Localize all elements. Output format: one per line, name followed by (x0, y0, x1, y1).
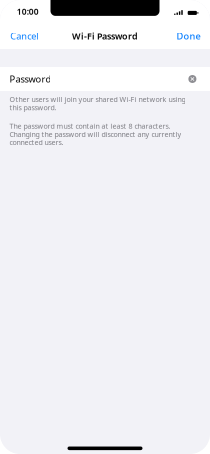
button[interactable]: Cancel (10, 26, 44, 46)
staticText: The password must contain at least 8 cha… (9, 121, 181, 147)
staticText: Password (9, 73, 51, 85)
button[interactable]: Done (172, 26, 200, 46)
staticText: Wi-Fi Password (72, 30, 138, 42)
staticText: Other users will join your shared Wi-Fi … (9, 94, 185, 112)
button[interactable]: Password (0, 67, 210, 91)
staticText: 10:00 (17, 6, 39, 17)
staticText: Cancel (10, 30, 38, 42)
staticText: Done (176, 30, 200, 42)
button[interactable]: Clear text (185, 71, 199, 87)
